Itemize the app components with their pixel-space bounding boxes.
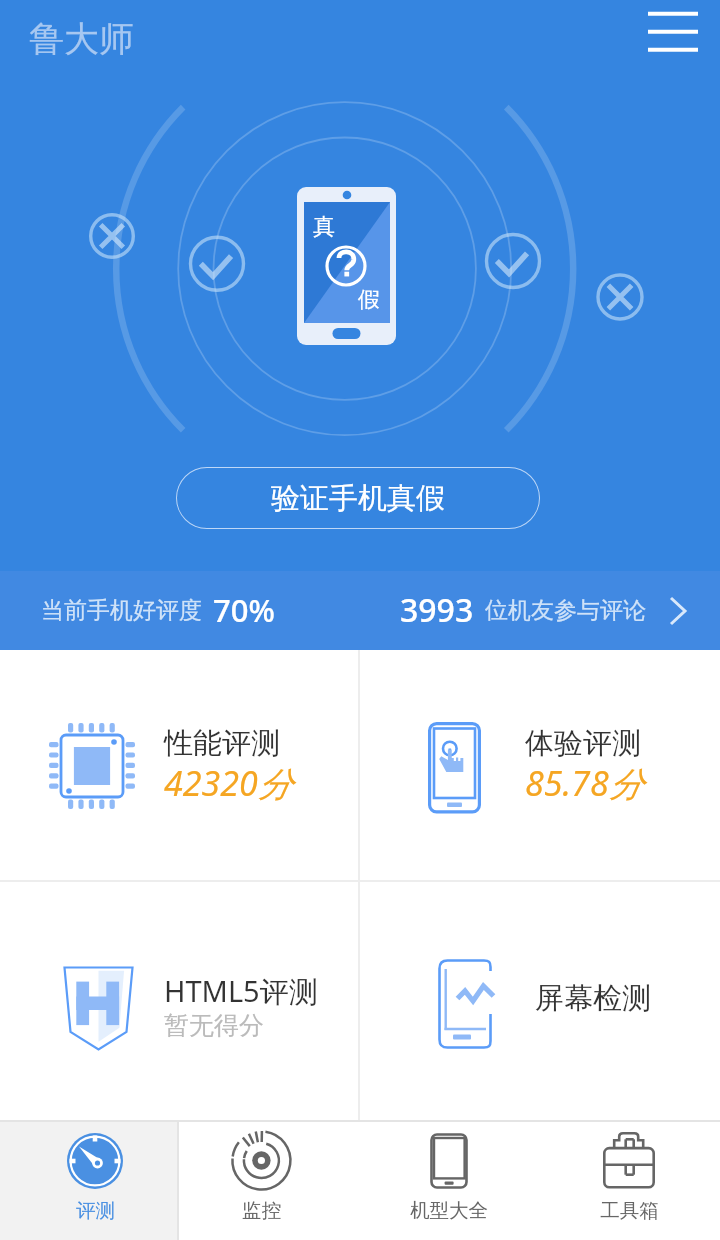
staticText: 屏幕检测 [535,980,651,1017]
button[interactable]: 验证手机真假 [176,467,540,529]
staticText: 机型大全 [410,1198,488,1223]
button[interactable]: 体验评测 [360,650,720,880]
staticText: HTML5评测 [164,971,318,1011]
button[interactable]: 工具箱 [540,1120,720,1240]
staticText: 监控 [242,1198,281,1223]
staticText: 位机友参与评论 [485,596,646,625]
staticText: 工具箱 [600,1198,659,1223]
button[interactable]: 评测 [0,1120,177,1240]
staticText: 验证手机真假 [271,480,445,517]
button[interactable]: HTML5评测 [0,882,358,1120]
staticText: 暂无得分 [164,1010,264,1041]
button[interactable]: 3993 [358,571,720,650]
button[interactable]: 机型大全 [358,1120,540,1240]
button[interactable]: 性能评测 [0,650,358,880]
staticText: 假 [358,286,380,314]
staticText: 42320分 [164,760,292,806]
staticText: 真 [313,213,335,241]
button[interactable]: Menu [644,0,720,76]
staticText: 3993 [400,588,474,632]
staticText: 性能评测 [164,725,280,762]
staticText: 当前手机好评度 [41,596,202,625]
button[interactable]: 屏幕检测 [360,882,720,1120]
staticText: 鲁大师 [29,17,134,61]
staticText: 体验评测 [525,725,641,762]
staticText: 70% [213,589,275,631]
staticText: 评测 [76,1198,115,1223]
staticText: 85.78分 [525,760,643,806]
button[interactable]: 监控 [178,1120,358,1240]
button[interactable]: 当前手机好评度 [0,571,358,650]
